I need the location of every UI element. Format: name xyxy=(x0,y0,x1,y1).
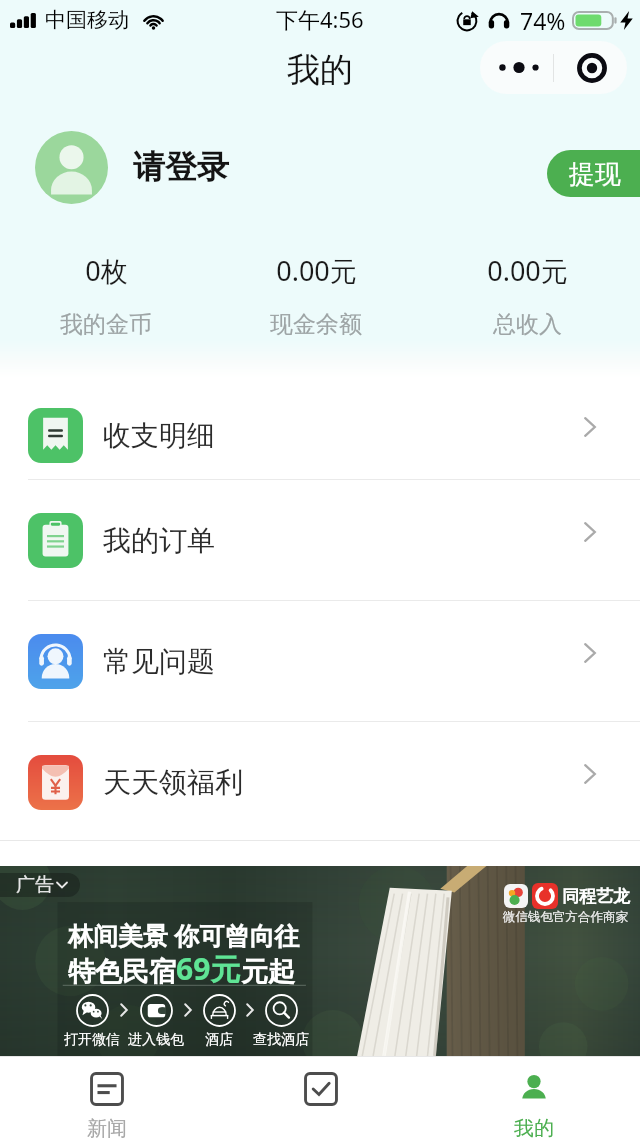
button[interactable]: 常见问题 xyxy=(0,601,640,721)
staticText: 下午4:56 xyxy=(276,4,364,34)
staticText: 我的 xyxy=(514,1116,554,1138)
button[interactable]: 打开微信 xyxy=(60,994,124,1049)
staticText: 现金余额 xyxy=(270,310,362,339)
button[interactable]: 广告 xyxy=(16,873,68,897)
staticText: 69元 xyxy=(176,948,241,989)
staticText: 提现 xyxy=(569,158,621,191)
staticText: 微信钱包官方合作商家 xyxy=(503,909,628,925)
staticText: 广告 xyxy=(16,873,54,897)
button[interactable]: 收支明细 xyxy=(0,359,640,479)
staticText: 林间美景 你可曾向往 xyxy=(68,918,300,952)
staticText: 常见问题 xyxy=(103,644,215,679)
staticText: 收支明细 xyxy=(103,418,215,453)
staticText: 0枚 xyxy=(85,252,128,289)
button[interactable]: 0.00元 xyxy=(447,252,607,339)
staticText: 进入钱包 xyxy=(128,1031,184,1049)
staticText: 酒店 xyxy=(205,1031,233,1049)
button[interactable]: 天天领福利 xyxy=(0,722,640,842)
button[interactable]: 进入钱包 xyxy=(124,994,188,1049)
staticText: 同程艺龙 xyxy=(562,886,630,907)
staticText: 打开微信 xyxy=(64,1031,120,1049)
button[interactable]: 请登录 xyxy=(133,147,229,187)
staticText: 我的订单 xyxy=(103,523,215,558)
staticText: 74% xyxy=(520,5,566,36)
button[interactable]: 我的 xyxy=(427,1057,640,1138)
button[interactable]: More options xyxy=(480,41,553,94)
button[interactable]: 提现 xyxy=(547,150,640,197)
staticText: 我的金币 xyxy=(60,310,152,339)
staticText: 天天领福利 xyxy=(103,765,243,800)
button[interactable]: 我的订单 xyxy=(0,480,640,600)
staticText: 元起 xyxy=(241,955,295,989)
button[interactable]: Tasks xyxy=(214,1057,427,1138)
button[interactable]: 新闻 xyxy=(0,1057,214,1138)
button[interactable]: 查找酒店 xyxy=(249,994,313,1049)
staticText: 特色民宿 xyxy=(68,955,176,989)
button[interactable] xyxy=(35,131,108,204)
staticText: 查找酒店 xyxy=(253,1031,309,1049)
button[interactable]: Close mini program xyxy=(554,41,627,94)
staticText: 总收入 xyxy=(493,310,562,339)
staticText: 0.00元 xyxy=(276,252,357,289)
button[interactable]: 广告 xyxy=(0,866,640,1056)
staticText: 0.00元 xyxy=(487,252,568,289)
staticText: 我的 xyxy=(287,49,353,91)
button[interactable]: 0.00元 xyxy=(236,252,396,339)
button[interactable]: 0枚 xyxy=(26,252,186,339)
button[interactable]: 酒店 xyxy=(201,994,237,1049)
staticText: 新闻 xyxy=(87,1116,127,1138)
staticText: 中国移动 xyxy=(45,7,129,33)
